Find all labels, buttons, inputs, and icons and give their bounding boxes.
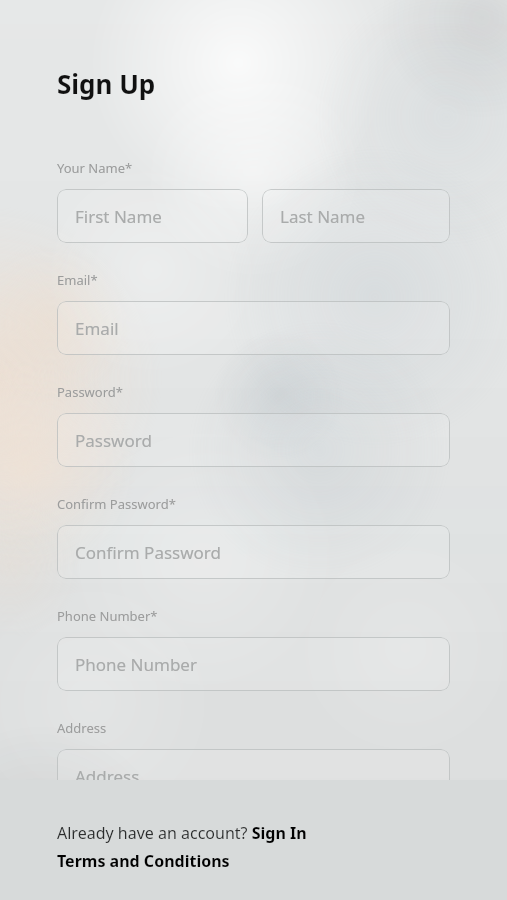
staticText: Your Name* — [57, 159, 133, 177]
button[interactable]: Terms and Conditions — [57, 850, 483, 872]
button[interactable]: Password — [57, 413, 450, 467]
button[interactable]: Last Name — [262, 189, 450, 243]
staticText: Confirm Password* — [57, 495, 176, 513]
button[interactable]: Address — [57, 749, 450, 803]
button[interactable]: Email — [57, 301, 450, 355]
staticText: Phone Number* — [57, 607, 158, 625]
staticText: First Name — [75, 205, 162, 228]
button[interactable]: First Name — [57, 189, 248, 243]
button[interactable]: Phone Number — [57, 637, 450, 691]
staticText: Address — [75, 765, 140, 788]
staticText: Last Name — [280, 205, 366, 228]
staticText: Email* — [57, 271, 98, 289]
button[interactable]: Already have an account? Sign In — [57, 822, 483, 844]
button[interactable]: Confirm Password — [57, 525, 450, 579]
staticText: Terms and Conditions — [57, 850, 230, 872]
staticText: Confirm Password — [75, 541, 221, 564]
staticText: Password* — [57, 383, 123, 401]
staticText: Phone Number — [75, 653, 197, 676]
staticText: Address — [57, 719, 107, 737]
staticText: Already have an account? Sign In — [57, 822, 307, 844]
button[interactable]: Sign Up — [57, 66, 156, 101]
staticText: Email — [75, 317, 119, 340]
staticText: Password — [75, 429, 152, 452]
